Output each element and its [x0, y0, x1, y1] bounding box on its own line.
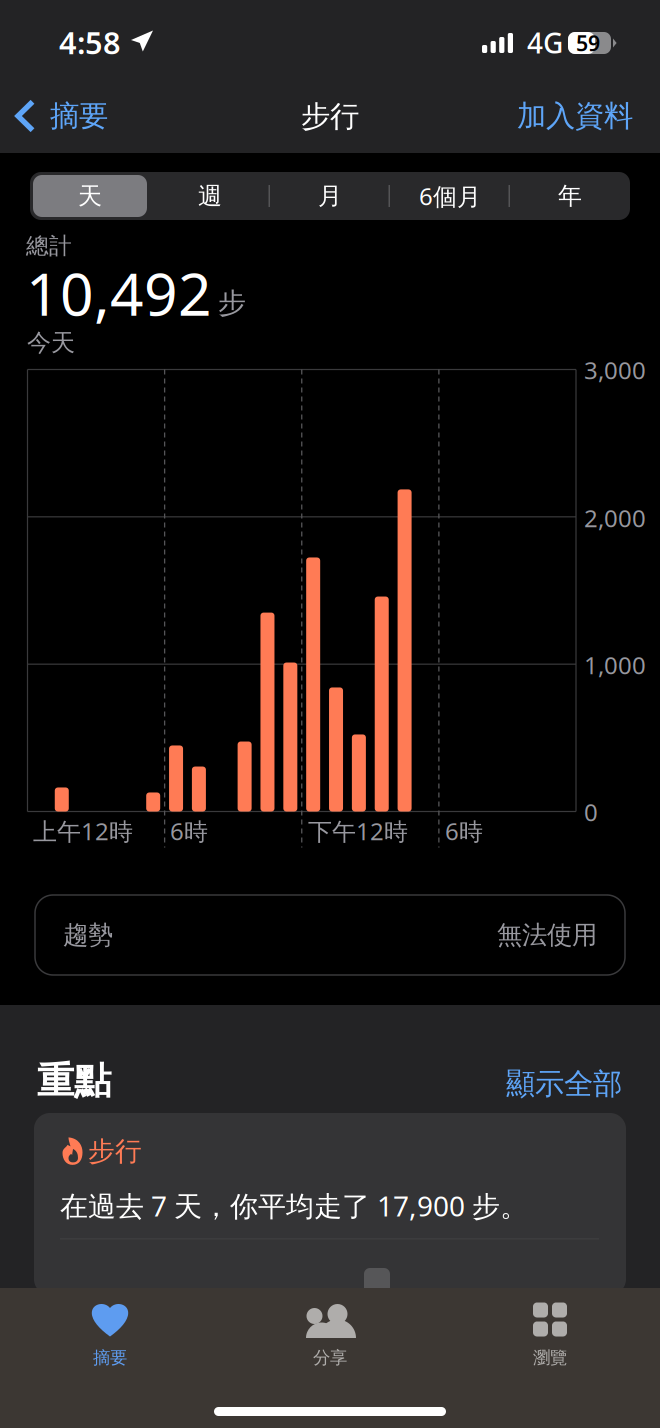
staticText: 6時 — [445, 815, 483, 847]
button[interactable]: 摘要 — [0, 1288, 220, 1388]
button[interactable]: 年 — [510, 172, 630, 220]
staticText: 6時 — [170, 815, 208, 847]
button[interactable]: 瀏覽 — [440, 1288, 660, 1388]
button[interactable]: 趨勢 — [35, 895, 625, 975]
staticText: 6個月 — [419, 180, 481, 212]
staticText: 3,000 — [584, 354, 646, 386]
staticText: 月 — [318, 181, 342, 211]
staticText: 年 — [558, 181, 582, 211]
staticText: 1,000 — [584, 649, 646, 681]
staticText: 今天 — [27, 328, 75, 357]
button[interactable]: 天 — [30, 172, 150, 220]
staticText: 摘要 — [93, 1347, 127, 1368]
staticText: 在過去 7 天，你平均走了 17,900 步。 — [60, 1187, 528, 1224]
button[interactable]: 週 — [150, 172, 270, 220]
staticText: 重點 — [37, 1058, 111, 1104]
staticText: 步 — [218, 286, 246, 320]
button[interactable]: 月 — [270, 172, 390, 220]
staticText: 加入資料 — [517, 98, 633, 134]
button[interactable]: 加入資料 — [503, 88, 633, 144]
staticText: 分享 — [313, 1347, 347, 1368]
button[interactable]: 6個月 — [390, 172, 510, 220]
staticText: 4:58 — [59, 22, 121, 63]
staticText: 週 — [198, 181, 222, 211]
staticText: 趨勢 — [63, 919, 113, 950]
staticText: 天 — [78, 181, 102, 211]
staticText: 4G — [527, 24, 563, 61]
staticText: 10,492 — [26, 254, 212, 332]
button[interactable]: 顯示全部 — [492, 1062, 622, 1106]
staticText: 上午12時 — [33, 815, 133, 847]
staticText: 步行 — [88, 1135, 142, 1168]
staticText: 總計 — [26, 232, 72, 260]
staticText: 下午12時 — [308, 815, 408, 847]
button[interactable]: 步行 — [34, 1113, 626, 1295]
staticText: 瀏覽 — [533, 1347, 567, 1368]
staticText: 顯示全部 — [506, 1066, 622, 1102]
staticText: 無法使用 — [497, 919, 597, 950]
staticText: 59 — [576, 29, 600, 57]
staticText: 步行 — [301, 98, 359, 134]
button[interactable]: 分享 — [220, 1288, 440, 1388]
staticText: 摘要 — [50, 98, 108, 134]
staticText: 2,000 — [584, 502, 646, 534]
staticText: 0 — [584, 796, 598, 828]
button[interactable]: 摘要 — [15, 88, 135, 144]
